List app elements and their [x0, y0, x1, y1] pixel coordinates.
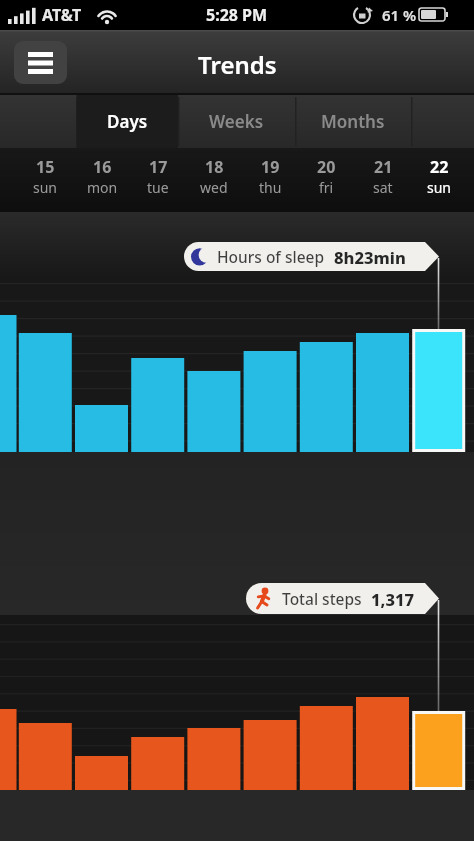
staticText: Hours of sleep: [217, 246, 325, 267]
staticText: Trends: [198, 48, 277, 76]
staticText: 19: [261, 156, 280, 178]
staticText: tue: [147, 178, 169, 197]
staticText: 18: [205, 156, 224, 178]
staticText: fri: [319, 178, 334, 197]
staticText: sat: [373, 178, 393, 197]
staticText: 61 %: [382, 5, 417, 25]
button[interactable]: Weeks: [178, 95, 295, 148]
staticText: Total steps: [282, 588, 362, 609]
staticText: sun: [33, 178, 58, 197]
button[interactable]: 18: [186, 153, 242, 199]
button[interactable]: Months: [295, 95, 411, 148]
staticText: 16: [93, 156, 112, 178]
staticText: 8h23min: [334, 246, 406, 268]
staticText: sun: [427, 178, 452, 197]
button[interactable]: 15: [17, 153, 73, 199]
button[interactable]: 16: [74, 153, 130, 199]
button[interactable]: [14, 41, 67, 84]
staticText: wed: [200, 178, 228, 197]
staticText: Weeks: [209, 110, 264, 133]
staticText: 1,317: [371, 588, 415, 610]
staticText: mon: [87, 178, 118, 197]
staticText: thu: [259, 178, 282, 197]
button[interactable]: Hours of sleep: [184, 242, 439, 271]
button[interactable]: 21: [355, 153, 411, 199]
button[interactable]: Total steps: [246, 583, 439, 614]
button[interactable]: 19: [242, 153, 298, 199]
staticText: 20: [317, 156, 336, 178]
staticText: Days: [107, 110, 148, 133]
staticText: Months: [321, 110, 385, 133]
staticText: 21: [374, 156, 393, 178]
button[interactable]: 17: [130, 153, 186, 199]
button[interactable]: 20: [298, 153, 354, 199]
button[interactable]: Days: [76, 95, 178, 148]
staticText: AT&T: [42, 4, 82, 26]
staticText: 17: [149, 156, 168, 178]
staticText: 22: [430, 156, 449, 178]
staticText: 5:28 PM: [206, 4, 268, 26]
button[interactable]: 22: [411, 153, 467, 199]
staticText: 15: [36, 156, 55, 178]
